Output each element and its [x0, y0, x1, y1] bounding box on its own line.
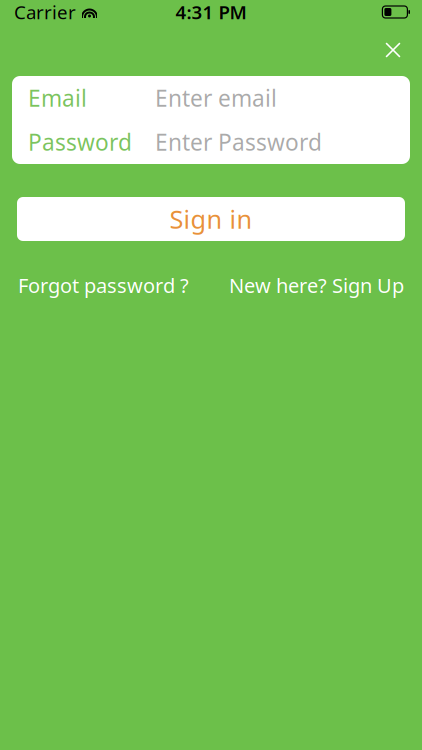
- button[interactable]: Close: [371, 28, 415, 72]
- staticText: Forgot password ?: [18, 272, 189, 299]
- staticText: Enter email: [155, 83, 277, 113]
- staticText: New here? Sign Up: [229, 272, 404, 299]
- staticText: Password: [28, 127, 132, 157]
- staticText: Sign in: [169, 202, 252, 236]
- staticText: 4:31 PM: [175, 0, 246, 24]
- button[interactable]: Forgot password ?: [18, 272, 189, 299]
- button[interactable]: Sign in: [17, 197, 405, 241]
- button[interactable]: New here? Sign Up: [229, 272, 404, 299]
- staticText: Carrier: [14, 0, 76, 24]
- staticText: Email: [28, 83, 87, 113]
- staticText: Enter Password: [155, 127, 322, 157]
